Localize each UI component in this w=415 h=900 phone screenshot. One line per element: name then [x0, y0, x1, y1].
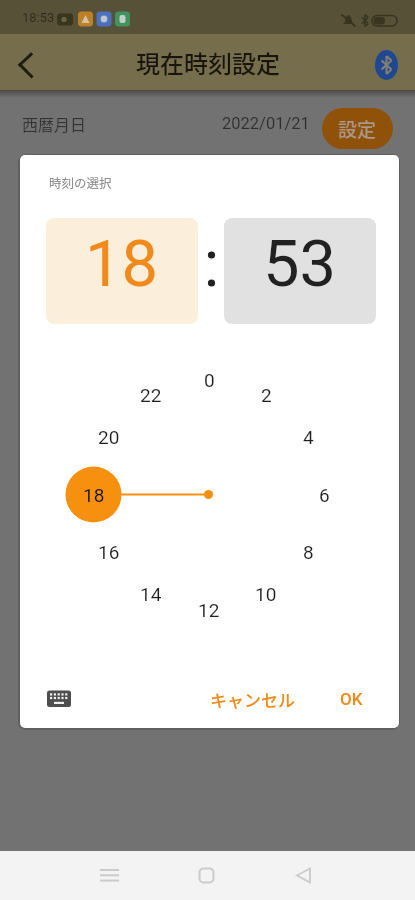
staticText: 18: [83, 484, 105, 506]
staticText: 53: [263, 226, 337, 302]
button[interactable]: 16: [85, 538, 133, 566]
staticText: 12: [198, 599, 220, 621]
staticText: 18:53: [22, 10, 55, 25]
button[interactable]: [283, 855, 324, 896]
staticText: 10: [255, 583, 277, 605]
button[interactable]: 4: [284, 423, 332, 451]
staticText: キャンセル: [210, 687, 295, 712]
staticText: 2022/01/21: [222, 114, 310, 133]
button[interactable]: 53: [224, 218, 376, 324]
staticText: 時刻の選択: [49, 173, 112, 191]
button[interactable]: 18: [70, 481, 118, 509]
staticText: 8: [303, 541, 314, 563]
button[interactable]: 12: [185, 596, 233, 624]
button[interactable]: 2: [242, 381, 290, 409]
button[interactable]: 22: [127, 381, 175, 409]
staticText: OK: [340, 689, 363, 709]
button[interactable]: 18: [46, 218, 198, 324]
button[interactable]: [186, 855, 227, 896]
staticText: 22: [140, 384, 162, 406]
button[interactable]: 6: [300, 481, 348, 509]
button[interactable]: 8: [284, 538, 332, 566]
button[interactable]: [37, 679, 81, 719]
button[interactable]: OK: [323, 679, 379, 719]
button[interactable]: キャンセル: [189, 679, 315, 719]
staticText: 4: [303, 426, 314, 448]
staticText: 14: [140, 583, 162, 605]
button[interactable]: 0: [185, 366, 233, 394]
staticText: 2: [261, 384, 272, 406]
button[interactable]: [373, 48, 400, 82]
button[interactable]: 10: [242, 580, 290, 608]
staticText: 現在時刻設定: [136, 45, 280, 80]
button[interactable]: 20: [85, 423, 133, 451]
staticText: 6: [319, 484, 330, 506]
staticText: 20: [98, 426, 120, 448]
staticText: 18: [85, 226, 159, 302]
staticText: 16: [98, 541, 120, 563]
button[interactable]: 設定: [322, 108, 393, 149]
button[interactable]: 14: [127, 580, 175, 608]
staticText: 0: [204, 369, 215, 391]
staticText: 西暦月日: [22, 112, 87, 135]
button[interactable]: [6, 44, 46, 84]
staticText: 設定: [338, 115, 377, 143]
button[interactable]: [89, 855, 130, 896]
